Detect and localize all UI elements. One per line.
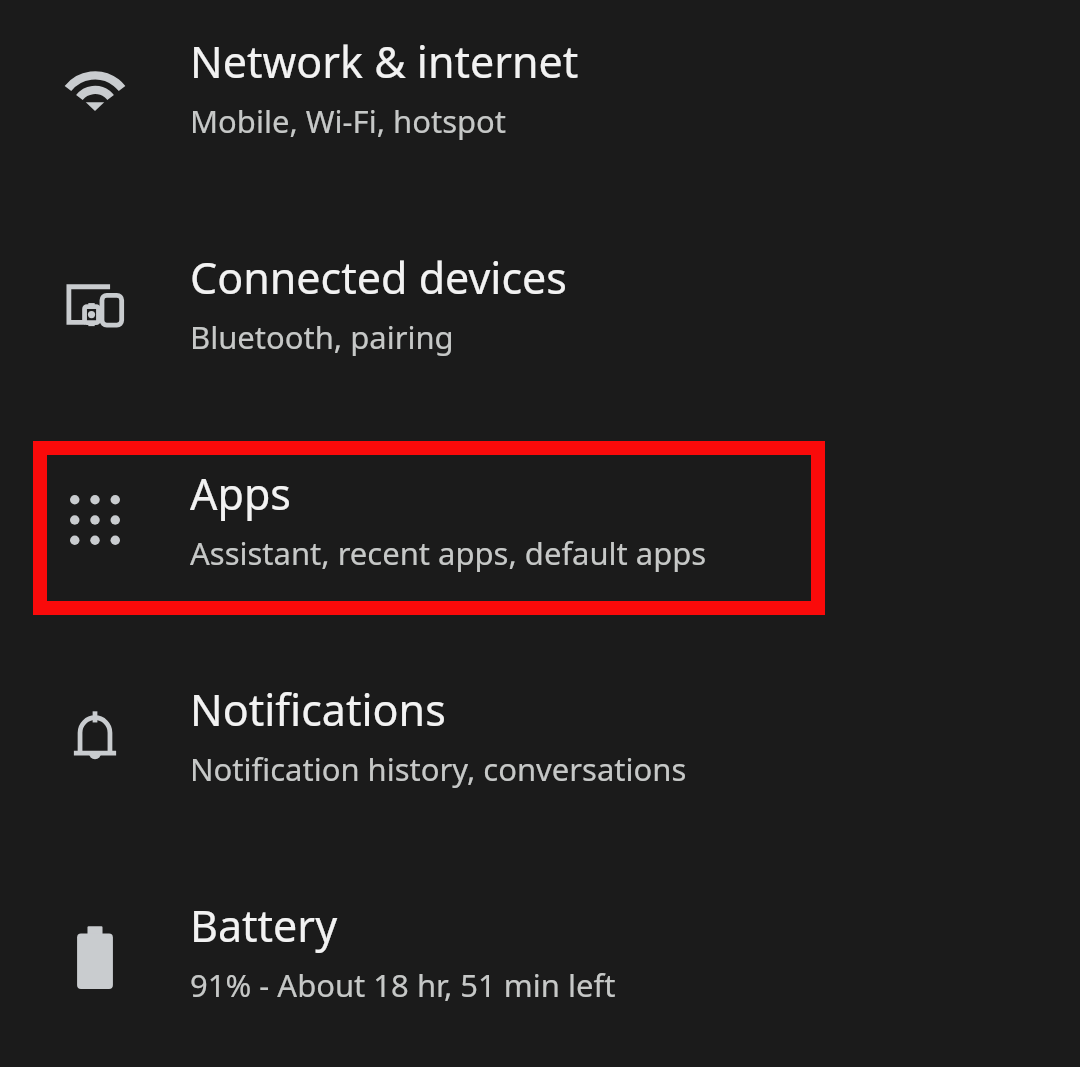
staticText: 91% - About 18 hr, 51 min left xyxy=(190,964,616,1006)
staticText: Mobile, Wi-Fi, hotspot xyxy=(190,100,507,142)
staticText: Assistant, recent apps, default apps xyxy=(190,532,707,574)
button[interactable]: Network and internet xyxy=(0,0,1080,216)
staticText: Connected devices xyxy=(190,248,567,307)
other: Notifications xyxy=(73,709,117,767)
button[interactable]: Connected devices xyxy=(0,216,1080,432)
button[interactable]: Notifications xyxy=(0,648,1080,864)
staticText: Apps xyxy=(190,464,291,523)
staticText: Bluetooth, pairing xyxy=(190,316,454,358)
other: Apps xyxy=(70,495,120,545)
other: Network and internet xyxy=(67,67,123,111)
button[interactable]: Battery xyxy=(0,864,1080,1067)
button[interactable]: Apps xyxy=(0,432,1080,648)
staticText: Notification history, conversations xyxy=(190,748,687,790)
staticText: Battery xyxy=(190,896,338,955)
other: Connected devices xyxy=(66,281,124,329)
staticText: Network & internet xyxy=(190,32,579,91)
staticText: Notifications xyxy=(190,680,446,739)
other: Battery xyxy=(67,925,123,991)
